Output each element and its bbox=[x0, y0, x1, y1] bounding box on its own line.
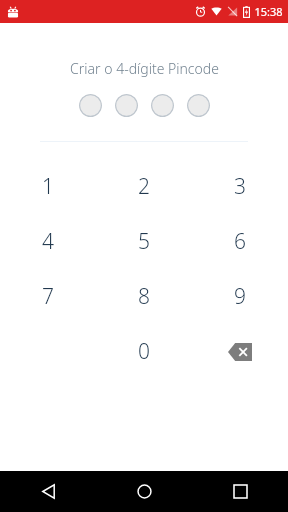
button[interactable]: 0 bbox=[96, 324, 192, 379]
button[interactable]: 3 bbox=[192, 159, 288, 214]
button[interactable]: 4 bbox=[0, 214, 96, 269]
button[interactable]: Home bbox=[96, 471, 192, 512]
staticText: 0 bbox=[138, 337, 150, 366]
staticText: 5 bbox=[138, 227, 150, 256]
staticText: 8 bbox=[138, 282, 150, 311]
staticText: 2 bbox=[138, 172, 150, 201]
staticText: 9 bbox=[234, 282, 246, 311]
button[interactable]: 1 bbox=[0, 159, 96, 214]
staticText: 7 bbox=[42, 282, 54, 311]
button[interactable]: 7 bbox=[0, 269, 96, 324]
button[interactable]: 2 bbox=[96, 159, 192, 214]
button[interactable]: Backspace bbox=[192, 324, 288, 379]
staticText: 3 bbox=[234, 172, 246, 201]
button[interactable]: Back bbox=[0, 471, 96, 512]
button[interactable]: 9 bbox=[192, 269, 288, 324]
staticText: 1 bbox=[42, 172, 54, 201]
button[interactable]: 5 bbox=[96, 214, 192, 269]
staticText: 15:38 bbox=[254, 4, 283, 19]
staticText: 4 bbox=[42, 227, 54, 256]
staticText: 6 bbox=[234, 227, 246, 256]
staticText: Criar o 4-dígite Pincode bbox=[70, 59, 219, 78]
button[interactable]: 8 bbox=[96, 269, 192, 324]
button[interactable]: Recent apps bbox=[192, 471, 288, 512]
button[interactable]: 6 bbox=[192, 214, 288, 269]
